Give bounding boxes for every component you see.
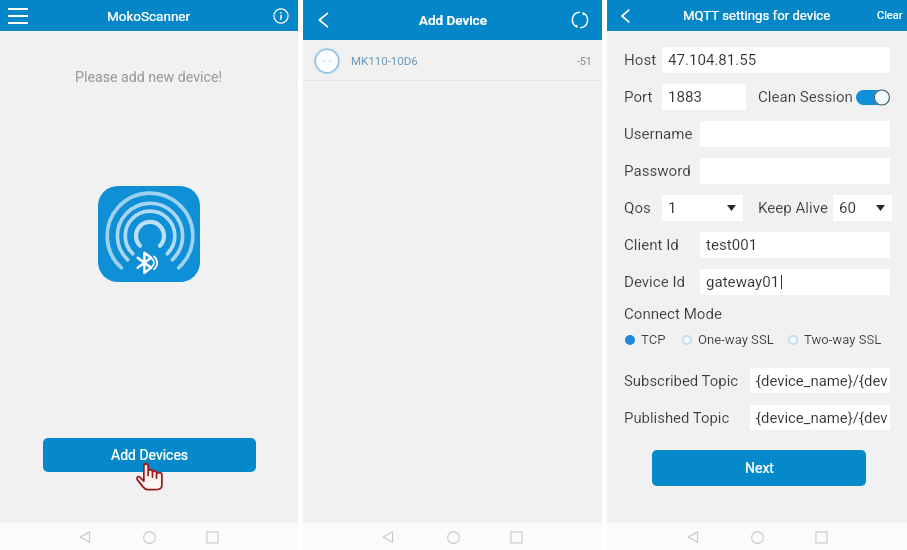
button[interactable]: gateway01	[700, 269, 890, 295]
staticText: Add Device	[419, 12, 487, 28]
staticText: Client Id	[624, 236, 679, 254]
staticText: MK110-10D6	[351, 54, 418, 67]
staticText: Add Devices	[111, 447, 189, 463]
button[interactable]: Info	[268, 3, 294, 29]
staticText: Keep Alive	[758, 199, 828, 217]
button[interactable]: radio	[786, 333, 799, 346]
button[interactable]: test001	[700, 232, 890, 258]
button[interactable]: {device_name}/{dev	[750, 368, 890, 393]
staticText: Device Id	[624, 273, 686, 291]
staticText: Qos	[624, 199, 651, 217]
staticText: Host	[624, 51, 657, 69]
button[interactable]: Recents	[809, 525, 833, 549]
staticText: Please add new device!	[75, 69, 223, 86]
button[interactable]: Back	[613, 4, 637, 28]
staticText: One-way SSL	[698, 332, 774, 347]
button[interactable]: Back	[681, 525, 705, 549]
staticText: Published Topic	[624, 409, 730, 426]
button[interactable]: Clear	[873, 1, 907, 30]
staticText: 60	[839, 199, 856, 217]
button[interactable]: MK110-10D6	[303, 40, 602, 81]
button[interactable]: Next	[652, 450, 866, 486]
button[interactable]: Recents	[200, 525, 224, 549]
button[interactable]: Home	[441, 525, 465, 549]
button[interactable]: Refresh	[567, 7, 593, 33]
button[interactable]: Home	[745, 525, 769, 549]
button[interactable]: 47.104.81.55	[662, 47, 890, 73]
button[interactable]: Back	[376, 525, 400, 549]
staticText: Connect Mode	[624, 305, 722, 323]
staticText: Username	[624, 125, 693, 143]
staticText: gateway01	[706, 273, 780, 291]
staticText: -51	[577, 55, 592, 67]
button[interactable]: radio	[623, 333, 636, 346]
button[interactable]: Back	[310, 7, 336, 33]
staticText: Password	[624, 162, 691, 180]
staticText: Two-way SSL	[804, 332, 882, 347]
button[interactable]: Home	[137, 525, 161, 549]
button[interactable]: Menu	[3, 1, 33, 31]
button[interactable]: {device_name}/{dev	[750, 405, 890, 430]
button[interactable]: radio	[680, 333, 693, 346]
staticText: Clean Session	[758, 88, 853, 106]
button[interactable]: 1883	[662, 84, 746, 110]
button[interactable]: Recents	[504, 525, 528, 549]
button[interactable]: Add Devices	[43, 438, 256, 472]
staticText: 47.104.81.55	[668, 51, 757, 69]
button[interactable]: Back	[73, 525, 97, 549]
staticText: Clear	[877, 9, 903, 22]
button[interactable]: 1	[662, 195, 743, 221]
staticText: 1883	[668, 88, 702, 106]
staticText: MokoScanner	[107, 8, 191, 24]
staticText: test001	[706, 236, 758, 254]
staticText: {device_name}/{dev	[756, 409, 888, 426]
staticText: Next	[745, 460, 774, 476]
staticText: TCP	[641, 332, 666, 347]
staticText: MQTT settings for device	[683, 8, 831, 23]
button[interactable]: 60	[833, 195, 892, 221]
staticText: Subscribed Topic	[624, 372, 739, 389]
button[interactable]: Clean Session toggle	[856, 89, 890, 106]
staticText: Port	[624, 88, 653, 106]
staticText: 1	[668, 199, 677, 217]
staticText: {device_name}/{dev	[756, 372, 888, 389]
